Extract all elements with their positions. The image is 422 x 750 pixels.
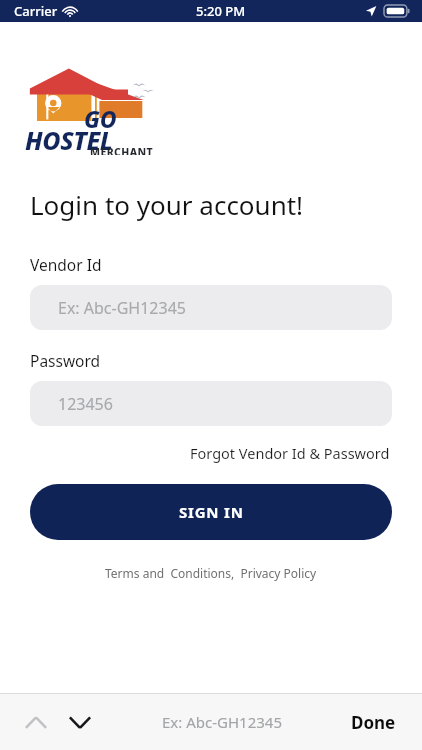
button[interactable]: Terms and Conditions, Privacy Policy <box>101 562 321 584</box>
staticText: Vendor Id <box>30 254 102 275</box>
button[interactable]: Ex: Abc-GH12345 <box>30 285 392 330</box>
staticText: Terms and Conditions, Privacy Policy <box>105 565 317 581</box>
button[interactable]: Next field <box>62 704 98 740</box>
button[interactable]: Done <box>347 707 400 738</box>
staticText: Done <box>351 711 396 734</box>
staticText: 123456 <box>58 393 113 415</box>
staticText: Carrier <box>14 2 58 20</box>
button[interactable]: SIGN IN <box>30 484 392 540</box>
button[interactable]: Previous field <box>18 704 54 740</box>
staticText: HOSTEL <box>25 123 113 155</box>
staticText: SIGN IN <box>179 502 244 522</box>
staticText: GO <box>84 103 117 134</box>
button[interactable]: 123456 <box>30 381 392 426</box>
staticText: 5:20 PM <box>196 2 246 20</box>
staticText: MERCHANT <box>90 145 154 155</box>
staticText: Ex: Abc-GH12345 <box>162 712 282 732</box>
staticText: Login to your account! <box>30 187 304 222</box>
staticText: Ex: Abc-GH12345 <box>58 297 186 319</box>
staticText: Password <box>30 350 101 371</box>
staticText: Forgot Vendor Id & Password <box>190 443 390 463</box>
button[interactable]: Forgot Vendor Id & Password <box>188 440 392 466</box>
